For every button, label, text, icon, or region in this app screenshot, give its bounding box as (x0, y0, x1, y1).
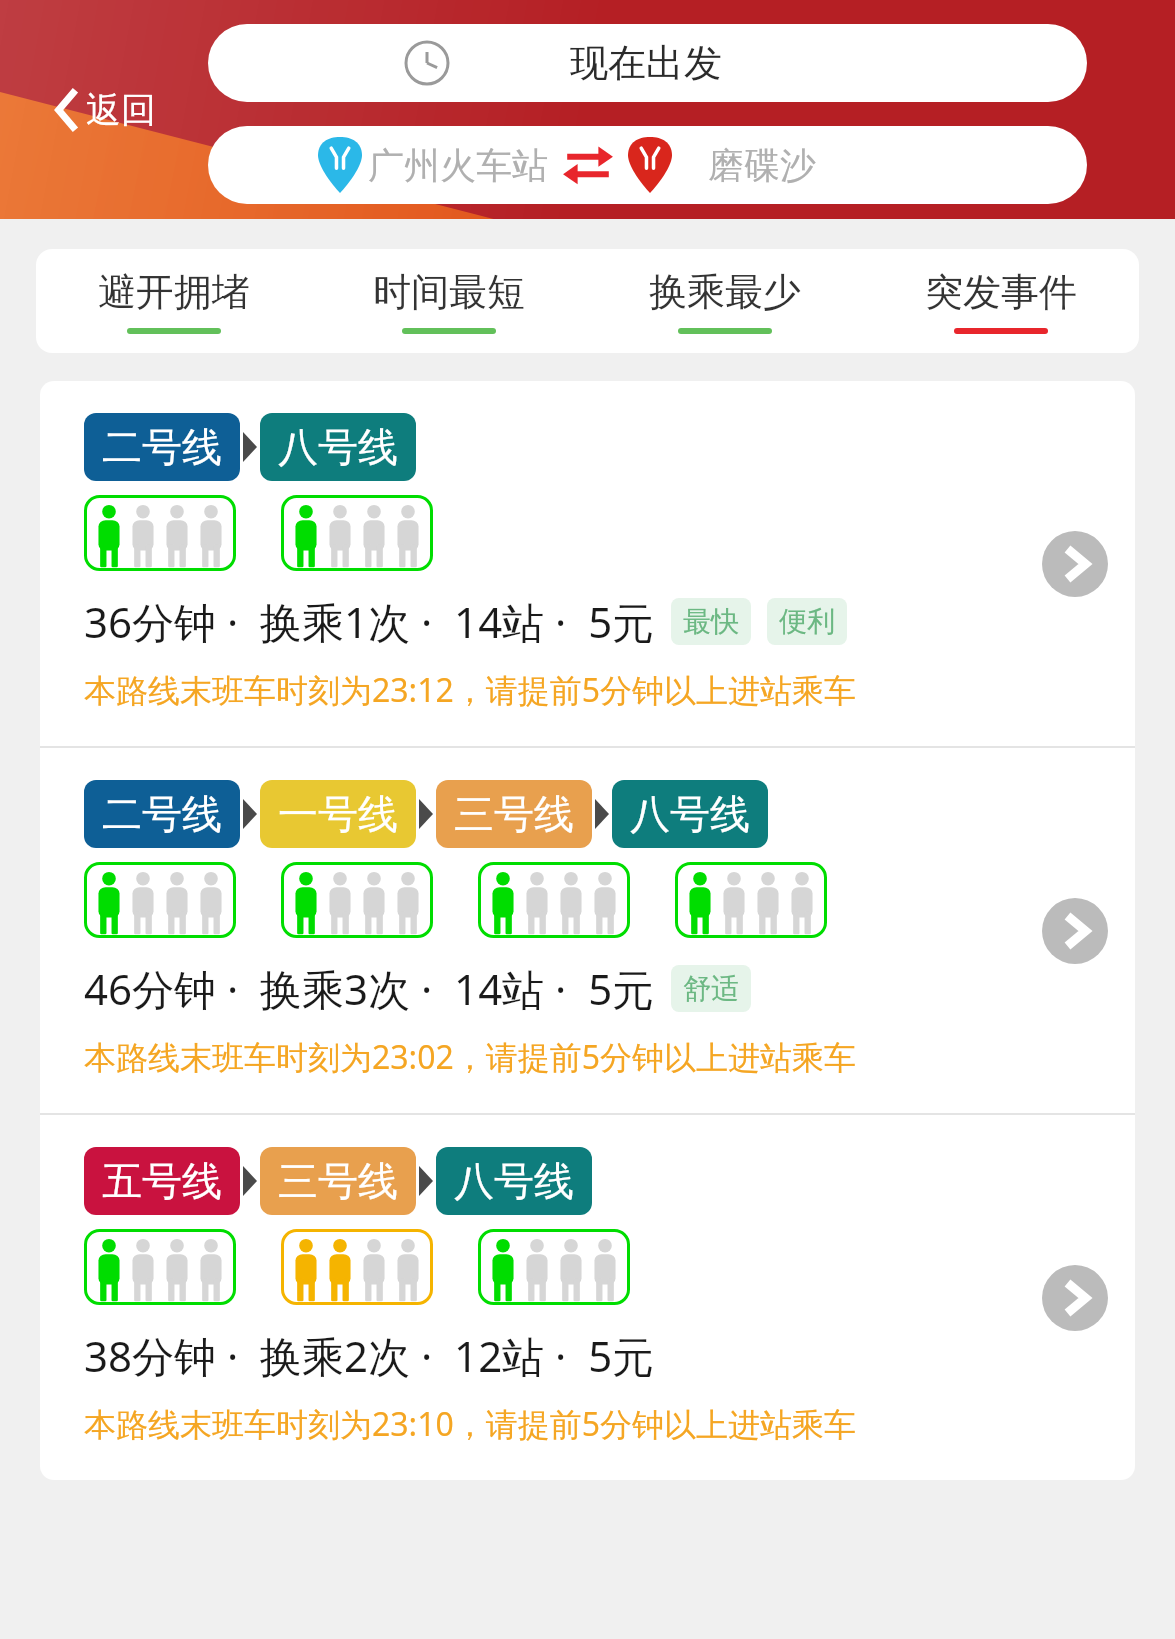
other: Location pin (628, 137, 672, 193)
button[interactable]: 返回 (52, 84, 160, 136)
staticText: 36分钟 · 换乘1次 · 14站 · 5元 (84, 593, 655, 650)
staticText: 三号线 (278, 1156, 398, 1206)
button[interactable]: 避开拥堵 (36, 249, 311, 353)
staticText: 二号线 (102, 789, 222, 839)
other: Location pin (318, 137, 362, 193)
staticText: 换乘最少 (649, 268, 801, 316)
button[interactable]: 二号线 (40, 748, 1135, 1113)
staticText: 二号线 (102, 422, 222, 472)
staticText: 避开拥堵 (98, 268, 250, 316)
staticText: 三号线 (454, 789, 574, 839)
staticText: 46分钟 · 换乘3次 · 14站 · 5元 (84, 960, 655, 1017)
staticText: 时间最短 (373, 268, 525, 316)
staticText: 八号线 (454, 1156, 574, 1206)
button[interactable]: 二号线 (40, 381, 1135, 746)
button[interactable]: 现在出发 (208, 24, 1087, 102)
staticText: 本路线末班车时刻为23:02，请提前5分钟以上进站乘车 (84, 1035, 857, 1079)
staticText: 最快 (683, 604, 739, 639)
button[interactable]: View route details (1042, 1265, 1108, 1331)
staticText: 返回 (86, 88, 156, 132)
staticText: 磨碟沙 (708, 143, 816, 188)
staticText: 现在出发 (570, 39, 722, 87)
staticText: 舒适 (683, 971, 739, 1006)
button[interactable]: Location pin (208, 126, 1087, 204)
button[interactable]: View route details (1042, 898, 1108, 964)
staticText: 八号线 (630, 789, 750, 839)
staticText: 38分钟 · 换乘2次 · 12站 · 5元 (84, 1327, 655, 1384)
staticText: 五号线 (102, 1156, 222, 1206)
button[interactable]: 突发事件 (863, 249, 1139, 353)
staticText: 八号线 (278, 422, 398, 472)
staticText: 一号线 (278, 789, 398, 839)
staticText: 便利 (779, 604, 835, 639)
staticText: 本路线末班车时刻为23:12，请提前5分钟以上进站乘车 (84, 668, 857, 712)
button[interactable]: View route details (1042, 531, 1108, 597)
button[interactable]: 五号线 (40, 1115, 1135, 1480)
button[interactable]: 换乘最少 (587, 249, 863, 353)
staticText: 本路线末班车时刻为23:10，请提前5分钟以上进站乘车 (84, 1402, 857, 1446)
button[interactable]: 时间最短 (311, 249, 587, 353)
staticText: 广州火车站 (368, 143, 548, 188)
staticText: 突发事件 (925, 268, 1077, 316)
button[interactable]: Swap origin and destination (562, 142, 614, 188)
